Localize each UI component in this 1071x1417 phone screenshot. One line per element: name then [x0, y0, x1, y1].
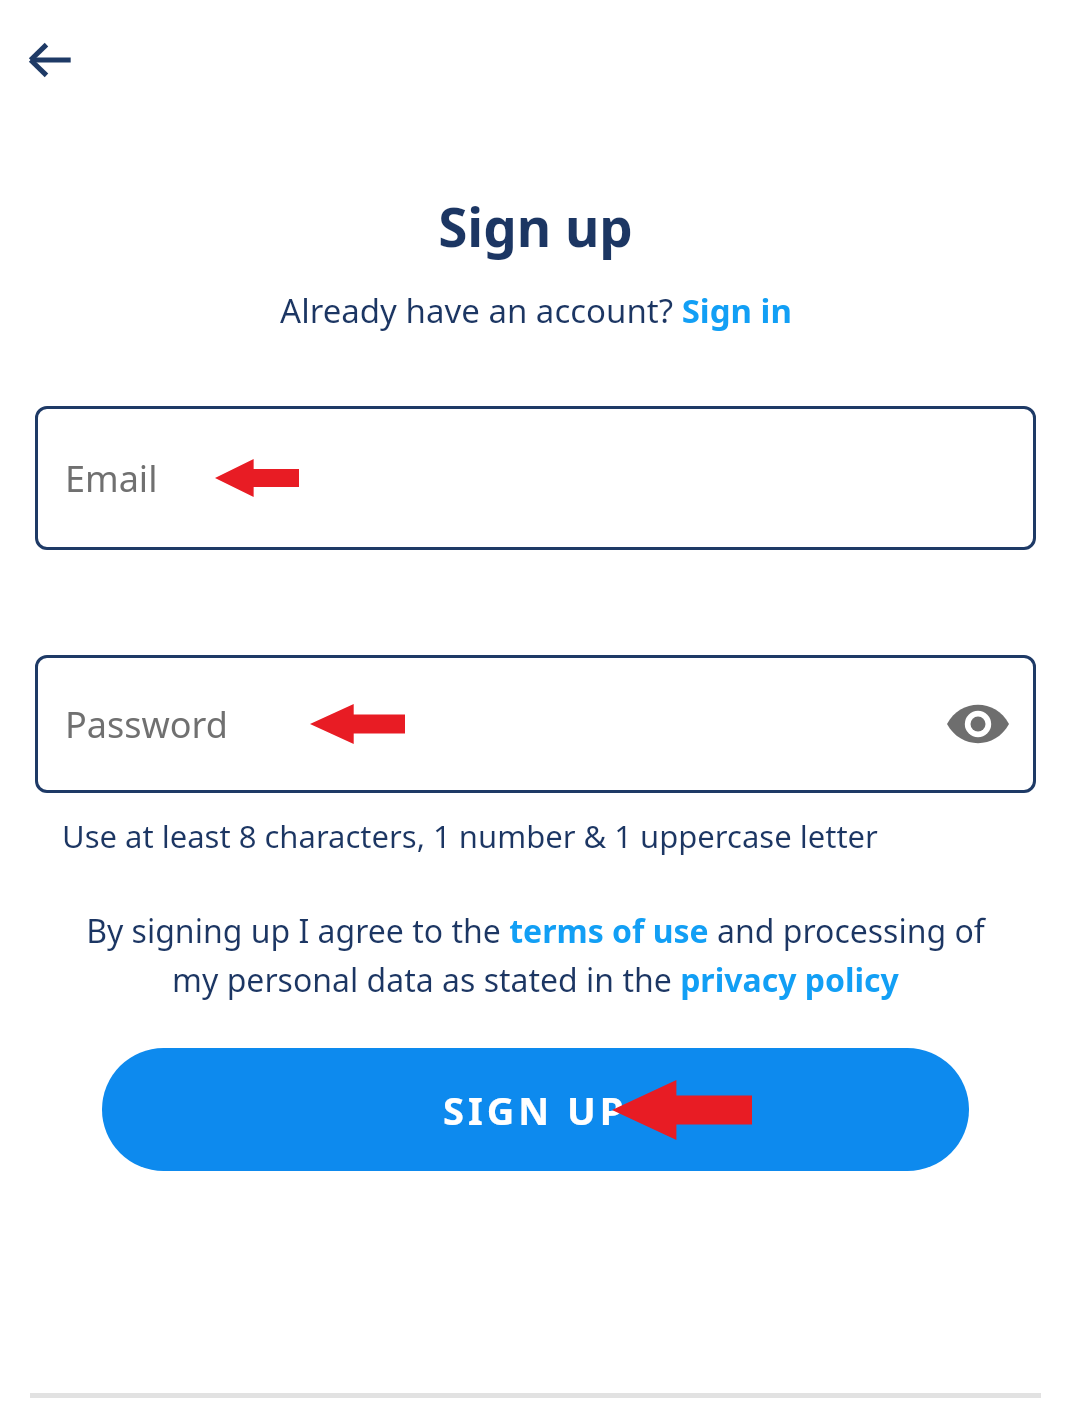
staticText: Use at least 8 characters, 1 number & 1 …	[62, 815, 1009, 857]
button[interactable]: Password	[35, 655, 1036, 793]
button[interactable]: Email	[35, 406, 1036, 550]
button[interactable]: Show password	[940, 686, 1016, 762]
staticText: Sign up	[438, 190, 633, 262]
staticText: Email	[65, 454, 158, 503]
staticText: SIGN UP	[443, 1084, 628, 1136]
button[interactable]: By signing up I agree to the terms of us…	[62, 909, 1009, 1002]
button[interactable]: Already have an account? Sign in	[0, 288, 1071, 333]
button[interactable]: Back	[14, 24, 86, 96]
staticText: Already have an account? Sign in	[280, 288, 792, 333]
staticText: Password	[65, 700, 228, 749]
staticText: By signing up I agree to the terms of us…	[62, 909, 1009, 1002]
button[interactable]: SIGN UP	[102, 1048, 969, 1171]
